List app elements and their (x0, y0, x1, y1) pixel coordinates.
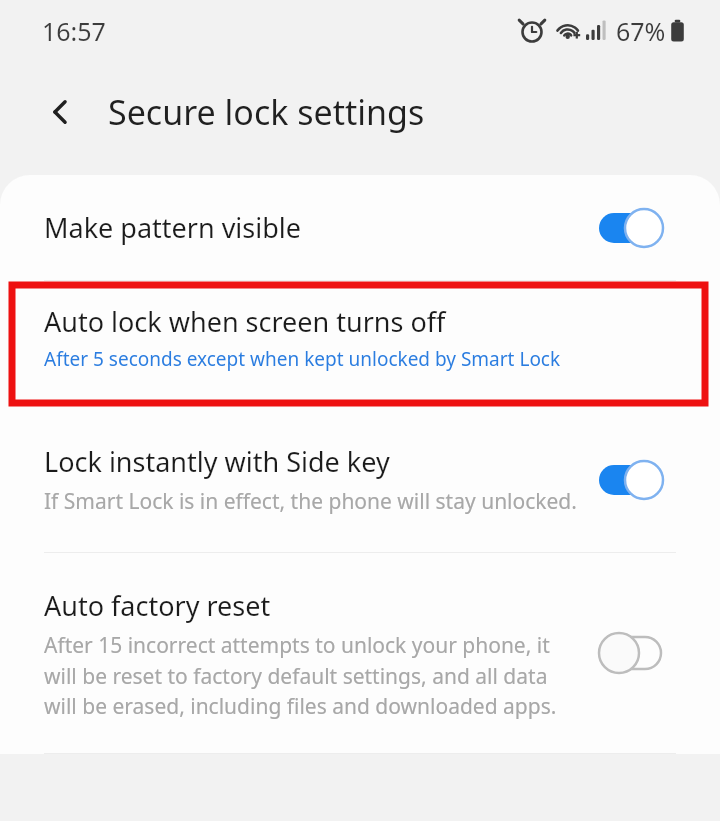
button[interactable]: Make pattern visible (0, 175, 720, 280)
staticText: 67% (616, 14, 666, 48)
staticText: After 15 incorrect attempts to unlock yo… (44, 631, 581, 720)
staticText: Lock instantly with Side key (44, 443, 390, 480)
staticText: If Smart Lock is in effect, the phone wi… (44, 487, 577, 516)
staticText: Auto lock when screen turns off (44, 303, 446, 340)
button[interactable]: Lock instantly with Side key (0, 407, 720, 552)
button[interactable]: Toggle off (599, 631, 665, 675)
staticText: Secure lock settings (108, 89, 425, 135)
staticText: Make pattern visible (44, 209, 599, 246)
button[interactable]: Auto factory reset (0, 553, 720, 753)
staticText: After 5 seconds except when kept unlocke… (44, 346, 561, 372)
button[interactable]: Toggle on (599, 458, 665, 502)
button[interactable]: Auto lock when screen turns off (0, 281, 720, 407)
staticText: 16:57 (42, 14, 106, 48)
button[interactable]: Toggle on (599, 206, 665, 250)
staticText: Auto factory reset (44, 587, 271, 624)
button[interactable]: Back (30, 81, 92, 143)
